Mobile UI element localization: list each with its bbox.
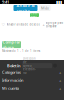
staticText: Añadir a lista de deseos: [6, 23, 39, 26]
button[interactable]: Más: [39, 5, 50, 11]
staticText: +: [59, 86, 61, 91]
button[interactable]: Añadir al carrito: [13, 5, 37, 11]
staticText: Añadir al carrito: [16, 3, 34, 13]
button[interactable]: Categorías: [0, 68, 64, 76]
button[interactable]: Comprar: [30, 13, 39, 17]
staticText: Boletín: [7, 63, 21, 68]
staticText: Más: [41, 5, 49, 11]
staticText: +: [59, 70, 61, 75]
staticText: Comprar: [30, 11, 38, 19]
staticText: ♡: [1, 22, 5, 27]
button[interactable]: Información: [0, 76, 64, 84]
staticText: Agregar para comparar: [45, 21, 62, 28]
staticText: Comprar ahora: [2, 39, 20, 50]
staticText: +: [59, 78, 61, 83]
button[interactable]: Mi cuenta: [0, 84, 64, 92]
staticText: Categorías: [2, 70, 21, 75]
button[interactable]: +: [42, 21, 62, 28]
button[interactable]: Comprar ahora: [2, 41, 21, 48]
staticText: Mi cuenta: [2, 86, 19, 91]
staticText: ▮▮▮: [56, 0, 62, 4]
staticText: Información: [2, 78, 23, 83]
staticText: 9:41: [2, 0, 9, 5]
staticText: Dirección de correo electrónico: [23, 57, 36, 74]
button[interactable]: ♡: [1, 22, 39, 27]
staticText: +: [42, 22, 44, 27]
staticText: Mostrando 1 - 1 de 1 items: [2, 49, 40, 53]
